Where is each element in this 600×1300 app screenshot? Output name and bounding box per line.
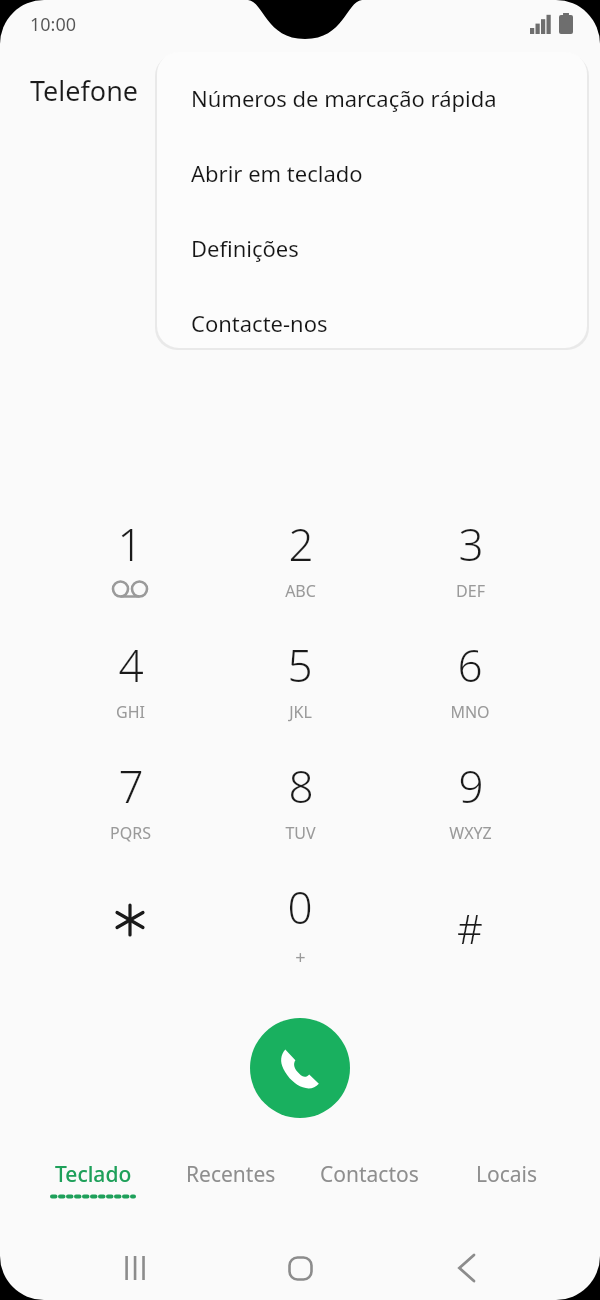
staticText: 5	[287, 635, 313, 695]
button[interactable]: 6	[400, 635, 540, 747]
button[interactable]: 5	[230, 635, 370, 747]
button[interactable]: Recentes	[159, 1160, 303, 1216]
staticText: Contacte-nos	[191, 308, 328, 338]
staticText: 3	[458, 514, 484, 574]
button[interactable]: 0	[230, 877, 370, 989]
staticText: 10:00	[30, 12, 77, 37]
staticText: Recentes	[186, 1160, 276, 1189]
staticText: +	[295, 945, 306, 970]
button[interactable]: Home	[265, 1240, 335, 1296]
button[interactable]: 3	[400, 514, 540, 626]
button[interactable]: Abrir em teclado	[157, 145, 587, 201]
staticText: MNO	[450, 701, 490, 723]
staticText: Locais	[476, 1160, 538, 1189]
staticText: 1	[117, 514, 143, 574]
button[interactable]: Back	[432, 1240, 502, 1296]
staticText: JKL	[289, 701, 312, 723]
staticText: Abrir em teclado	[191, 158, 363, 188]
button[interactable]: Recents	[100, 1240, 170, 1296]
staticText: WXYZ	[449, 822, 492, 844]
staticText: 4	[118, 635, 144, 695]
button[interactable]: Locais	[435, 1160, 579, 1216]
staticText: Definições	[191, 233, 299, 263]
button[interactable]	[60, 877, 200, 989]
staticText: 0	[287, 877, 313, 937]
button[interactable]: Contactos	[297, 1160, 441, 1216]
staticText: Teclado	[55, 1160, 132, 1189]
button[interactable]: 9	[400, 756, 540, 868]
staticText: 9	[458, 756, 484, 816]
button[interactable]: 7	[60, 756, 200, 868]
button[interactable]: 8	[230, 756, 370, 868]
staticText: DEF	[456, 580, 485, 602]
button[interactable]: #	[400, 877, 540, 989]
button[interactable]: Call	[250, 1018, 350, 1118]
button[interactable]: Números de marcação rápida	[157, 70, 587, 126]
staticText: Contactos	[320, 1160, 419, 1189]
staticText: GHI	[116, 701, 145, 723]
staticText: PQRS	[110, 822, 151, 844]
button[interactable]: Contacte-nos	[157, 295, 587, 348]
button[interactable]: Teclado	[21, 1160, 165, 1216]
button[interactable]: 1	[60, 514, 200, 626]
staticText: 6	[457, 635, 483, 695]
staticText: Números de marcação rápida	[191, 83, 497, 113]
staticText: ABC	[285, 580, 316, 602]
staticText: #	[457, 901, 483, 955]
staticText: 7	[118, 756, 144, 816]
button[interactable]: 2	[230, 514, 370, 626]
staticText: TUV	[285, 822, 316, 844]
button[interactable]: 4	[60, 635, 200, 747]
staticText: Telefone	[30, 72, 139, 109]
staticText: 8	[288, 756, 314, 816]
button[interactable]: Definições	[157, 220, 587, 276]
staticText: 2	[288, 514, 314, 574]
